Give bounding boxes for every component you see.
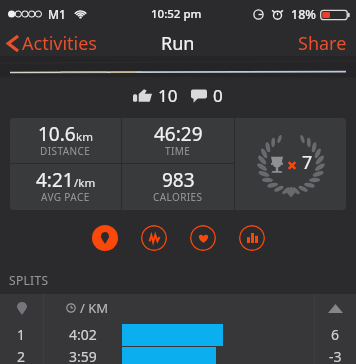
staticText: 46:29 (154, 121, 203, 147)
staticText: 983 (162, 167, 195, 193)
button[interactable]: 1 (0, 322, 356, 347)
button[interactable]: Heart rate (190, 225, 216, 251)
button[interactable]: 46:29 (122, 118, 234, 163)
staticText: M1 (48, 6, 66, 22)
button[interactable]: 0 (188, 80, 226, 111)
button[interactable]: Activities (0, 29, 105, 57)
staticText: AVG PACE (41, 190, 90, 204)
staticText: TIME (165, 144, 191, 158)
staticText: 0 (213, 84, 223, 107)
button[interactable]: / KM (0, 294, 356, 322)
button[interactable]: Splits chart (239, 225, 265, 251)
button[interactable]: 4:21 (10, 164, 121, 210)
staticText: 2 (17, 347, 26, 364)
button[interactable]: 2 (0, 347, 356, 364)
staticText: 6 (331, 325, 340, 344)
staticText: 10 (158, 84, 178, 107)
button[interactable]: 10 (130, 80, 181, 111)
staticText: Run (161, 31, 195, 56)
button[interactable]: 983 (122, 164, 234, 210)
button[interactable]: 10.6 (10, 118, 121, 163)
staticText: -3 (329, 347, 342, 364)
staticText: DISTANCE (40, 144, 91, 158)
button[interactable]: Share (288, 29, 356, 57)
staticText: 10.6 (38, 121, 76, 147)
button[interactable]: Achievements (235, 118, 346, 210)
staticText: 18% (291, 6, 316, 23)
button[interactable]: Pace analysis (141, 225, 167, 251)
staticText: 4:02 (69, 325, 97, 344)
staticText: /km (74, 175, 96, 191)
staticText: 3:59 (69, 347, 97, 364)
staticText: 7 (302, 150, 313, 175)
staticText: 4:21 (36, 167, 74, 193)
staticText: Share (298, 31, 347, 55)
button[interactable]: Route map (0, 56, 356, 78)
staticText: Activities (22, 31, 97, 55)
staticText: / KM (80, 299, 109, 317)
staticText: CALORIES (153, 190, 203, 204)
staticText: 1 (17, 325, 26, 344)
button[interactable]: Map (92, 225, 118, 251)
staticText: SPLITS (9, 272, 49, 288)
staticText: 10:52 pm (151, 6, 202, 22)
staticText: km (76, 129, 93, 145)
